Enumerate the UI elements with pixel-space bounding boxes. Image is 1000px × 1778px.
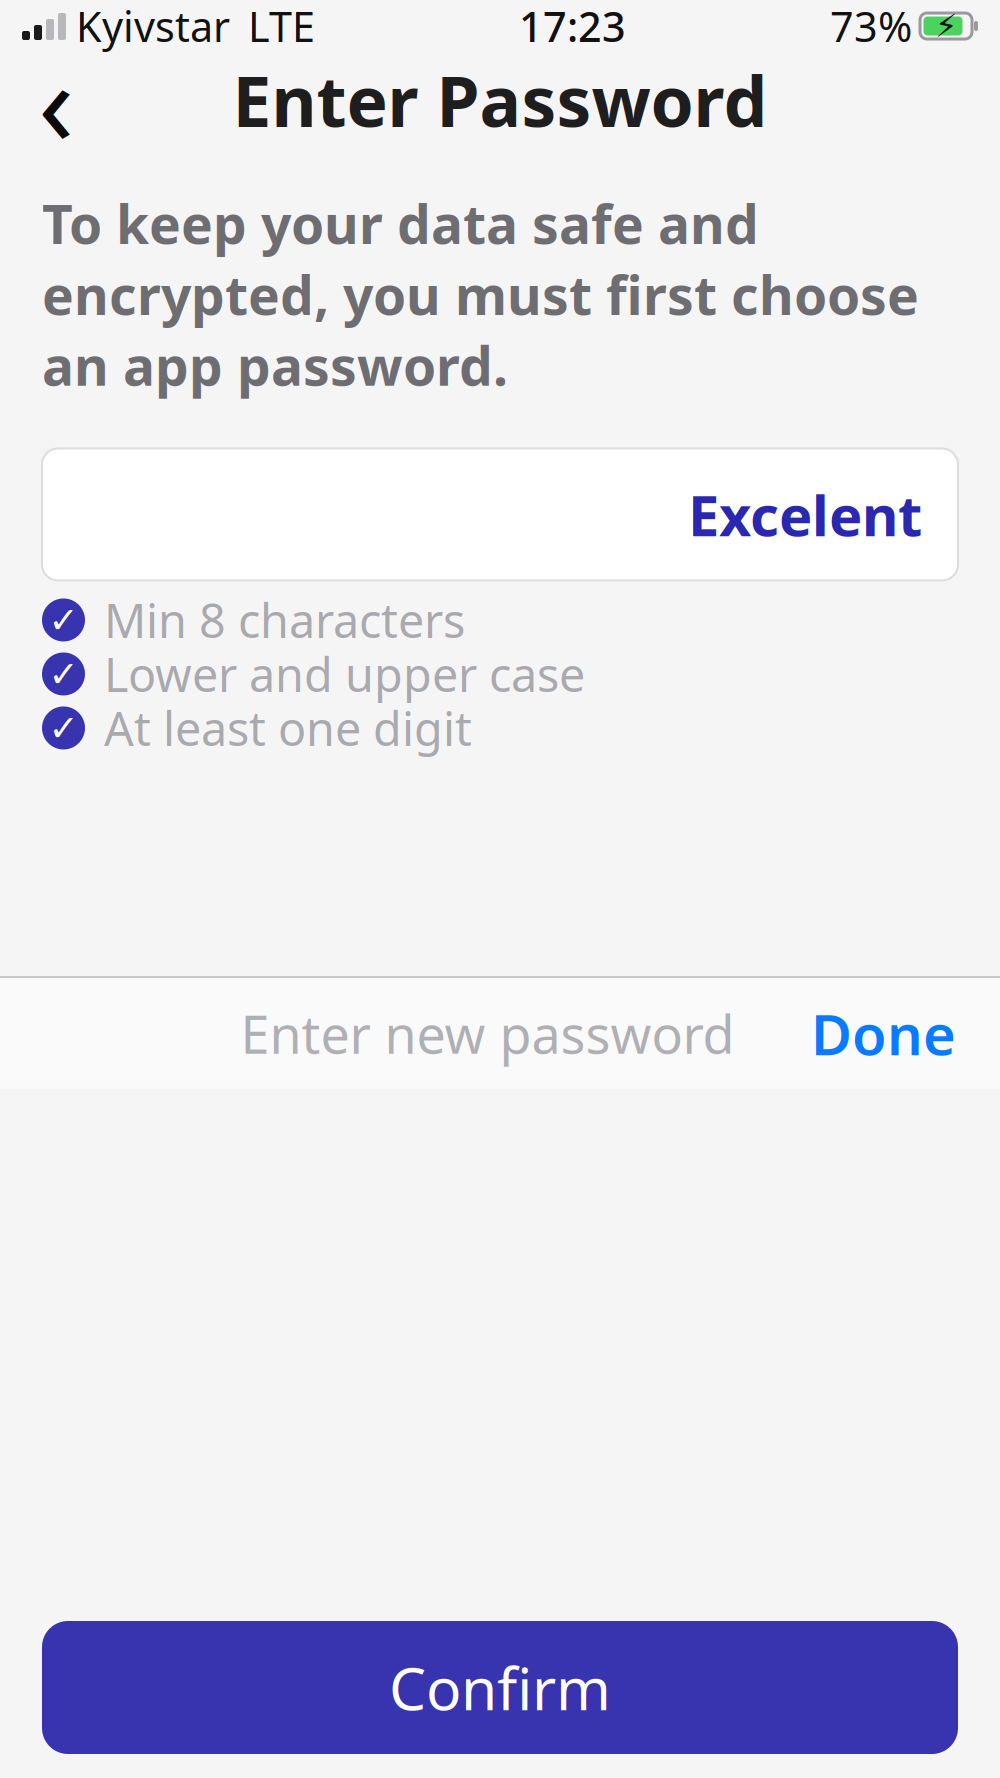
staticText: ✓: [48, 599, 78, 640]
staticText: To keep your data safe and encrypted, yo…: [42, 188, 919, 400]
staticText: ✓: [48, 653, 78, 694]
staticText: Kyivstar: [76, 0, 230, 53]
staticText: 17:23: [519, 0, 626, 53]
staticText: Lower and upper case: [104, 643, 585, 705]
button[interactable]: Done: [795, 982, 972, 1085]
button[interactable]: Back: [14, 58, 98, 142]
staticText: Excelent: [688, 477, 922, 552]
staticText: ‹: [38, 22, 74, 178]
staticText: LTE: [248, 0, 315, 53]
button[interactable]: Excelent: [42, 448, 958, 580]
staticText: Confirm: [389, 1648, 611, 1726]
staticText: Min 8 characters: [104, 589, 465, 651]
staticText: Enter Password: [232, 54, 767, 146]
staticText: Done: [811, 996, 956, 1071]
staticText: Enter new password: [240, 999, 734, 1068]
staticText: At least one digit: [104, 697, 472, 759]
staticText: 73%: [830, 0, 912, 53]
staticText: ⚡︎: [935, 8, 957, 44]
button[interactable]: Confirm: [42, 1621, 958, 1754]
staticText: ✓: [48, 707, 78, 748]
